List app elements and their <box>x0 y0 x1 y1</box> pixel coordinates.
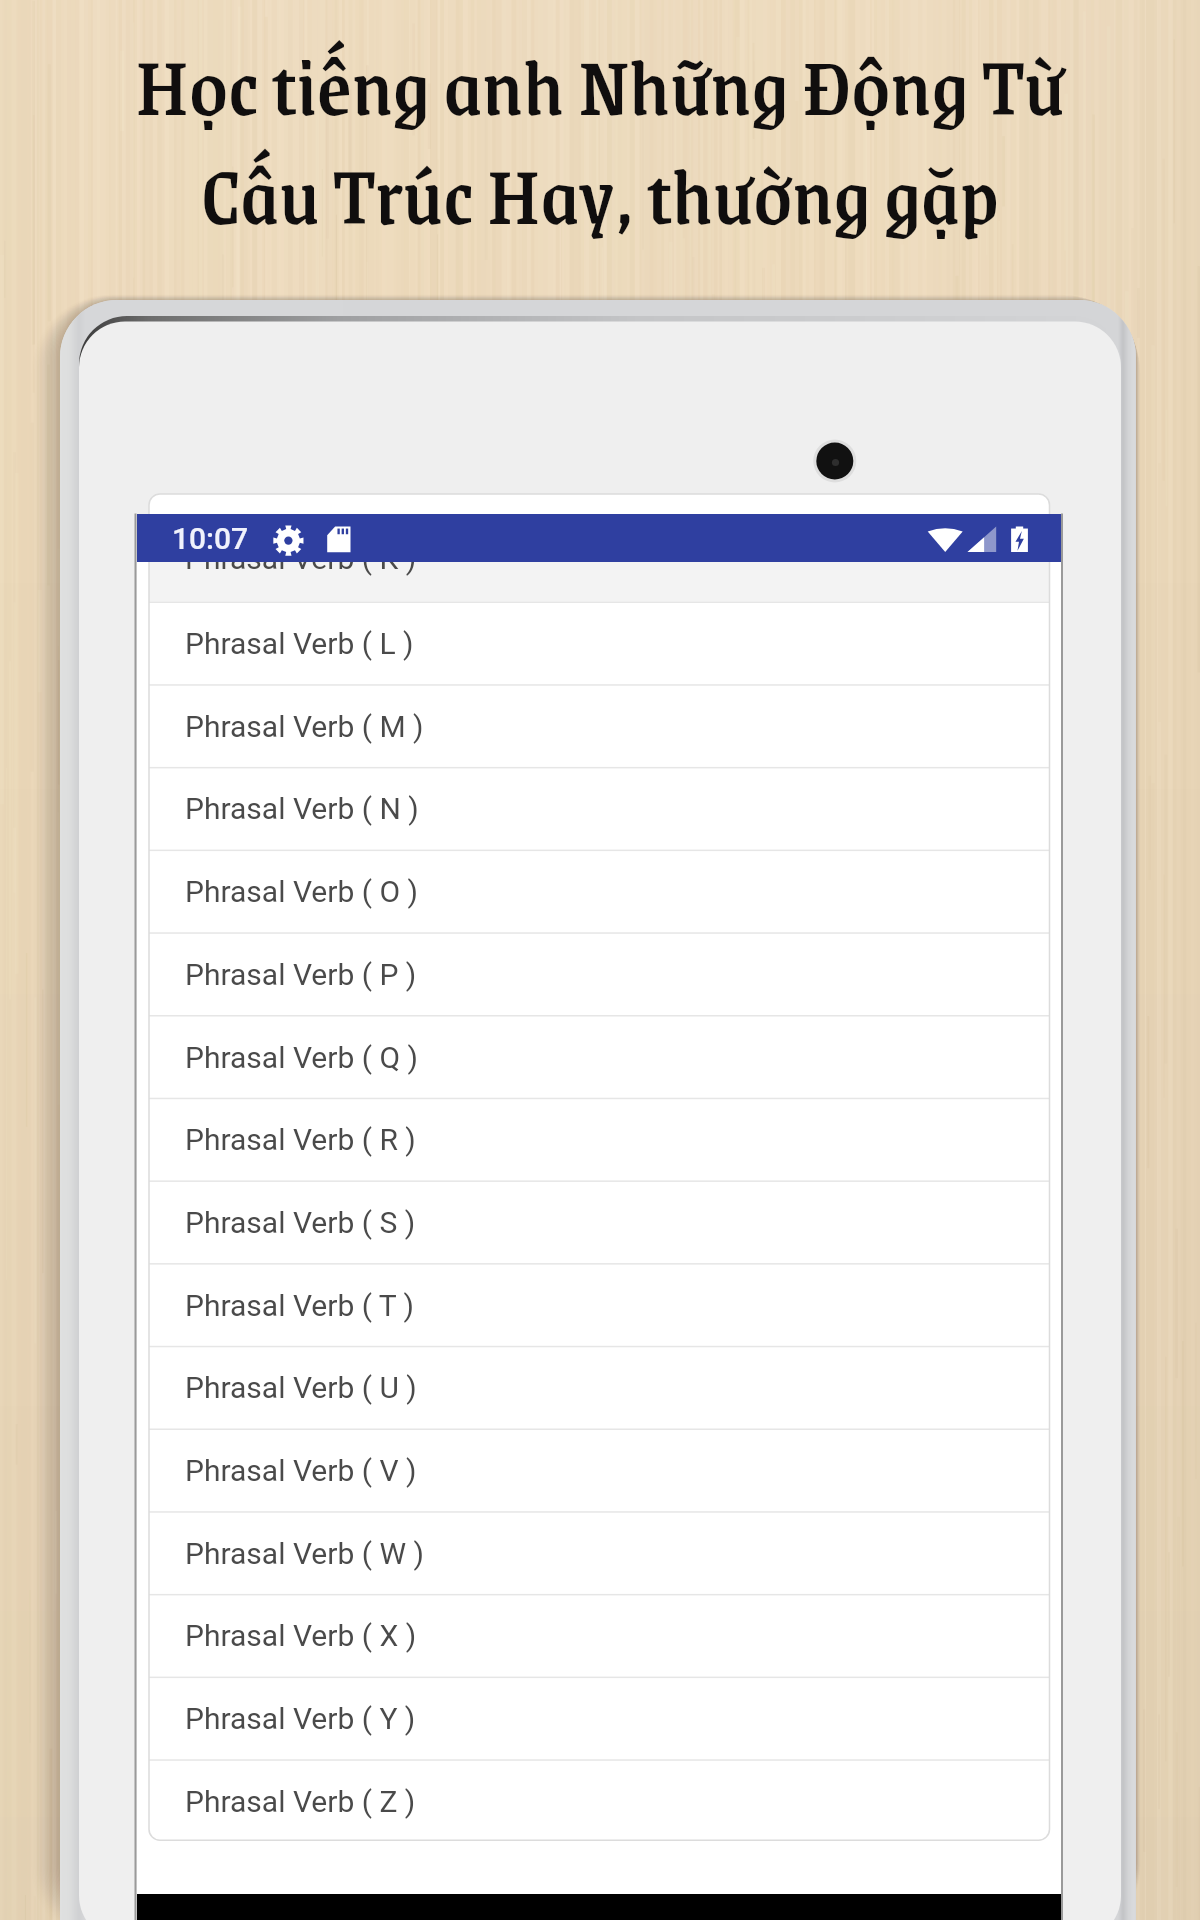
staticText: Phrasal Verb ( Y ) <box>185 1701 416 1736</box>
staticText: Phrasal Verb ( L ) <box>185 626 414 661</box>
button[interactable]: Phrasal Verb ( W ) <box>149 1513 1050 1594</box>
button[interactable]: Phrasal Verb ( Y ) <box>149 1678 1050 1759</box>
staticText: Phrasal Verb ( X ) <box>185 1618 417 1653</box>
button[interactable]: Phrasal Verb ( V ) <box>149 1430 1050 1511</box>
staticText: Phrasal Verb ( K ) <box>185 541 417 576</box>
staticText: Phrasal Verb ( W ) <box>185 1536 424 1571</box>
button[interactable]: Phrasal Verb ( U ) <box>149 1347 1050 1428</box>
button[interactable]: Settings <box>273 525 304 556</box>
button[interactable]: Phrasal Verb ( Q ) <box>149 1017 1050 1098</box>
button[interactable]: Phrasal Verb ( O ) <box>149 851 1050 932</box>
button[interactable]: Phrasal Verb ( P ) <box>149 934 1050 1015</box>
button[interactable]: Phrasal Verb ( R ) <box>149 1099 1050 1180</box>
staticText: Phrasal Verb ( Z ) <box>185 1784 416 1819</box>
staticText: Phrasal Verb ( N ) <box>185 791 419 826</box>
staticText: Học tiếng anh Những Động Từ <box>135 21 1065 147</box>
button[interactable]: Phrasal Verb ( S ) <box>149 1182 1050 1263</box>
staticText: Phrasal Verb ( U ) <box>185 1370 417 1405</box>
button[interactable]: Phrasal Verb ( T ) <box>149 1265 1050 1346</box>
button[interactable]: Phrasal Verb ( L ) <box>149 603 1050 684</box>
button[interactable]: Phrasal Verb ( X ) <box>149 1595 1050 1676</box>
staticText: Cấu Trúc Hay, thường gặp <box>201 130 999 256</box>
button[interactable]: Phrasal Verb ( M ) <box>149 686 1050 767</box>
staticText: 10:07 <box>172 521 249 556</box>
staticText: Phrasal Verb ( T ) <box>185 1288 415 1323</box>
staticText: Phrasal Verb ( S ) <box>185 1205 416 1240</box>
button[interactable]: Phrasal Verb ( N ) <box>149 768 1050 849</box>
staticText: Phrasal Verb ( R ) <box>185 1122 416 1157</box>
other: Wi-Fi, signal and battery status <box>927 526 1028 552</box>
button[interactable]: Phrasal Verb ( K ) <box>149 514 1050 602</box>
staticText: Phrasal Verb ( P ) <box>185 957 417 992</box>
button[interactable]: Phrasal Verb ( Z ) <box>149 1761 1050 1842</box>
staticText: Phrasal Verb ( O ) <box>185 874 418 909</box>
other: SD card <box>327 526 351 552</box>
staticText: Phrasal Verb ( M ) <box>185 709 424 744</box>
staticText: Phrasal Verb ( V ) <box>185 1453 417 1488</box>
staticText: Phrasal Verb ( Q ) <box>185 1040 418 1075</box>
